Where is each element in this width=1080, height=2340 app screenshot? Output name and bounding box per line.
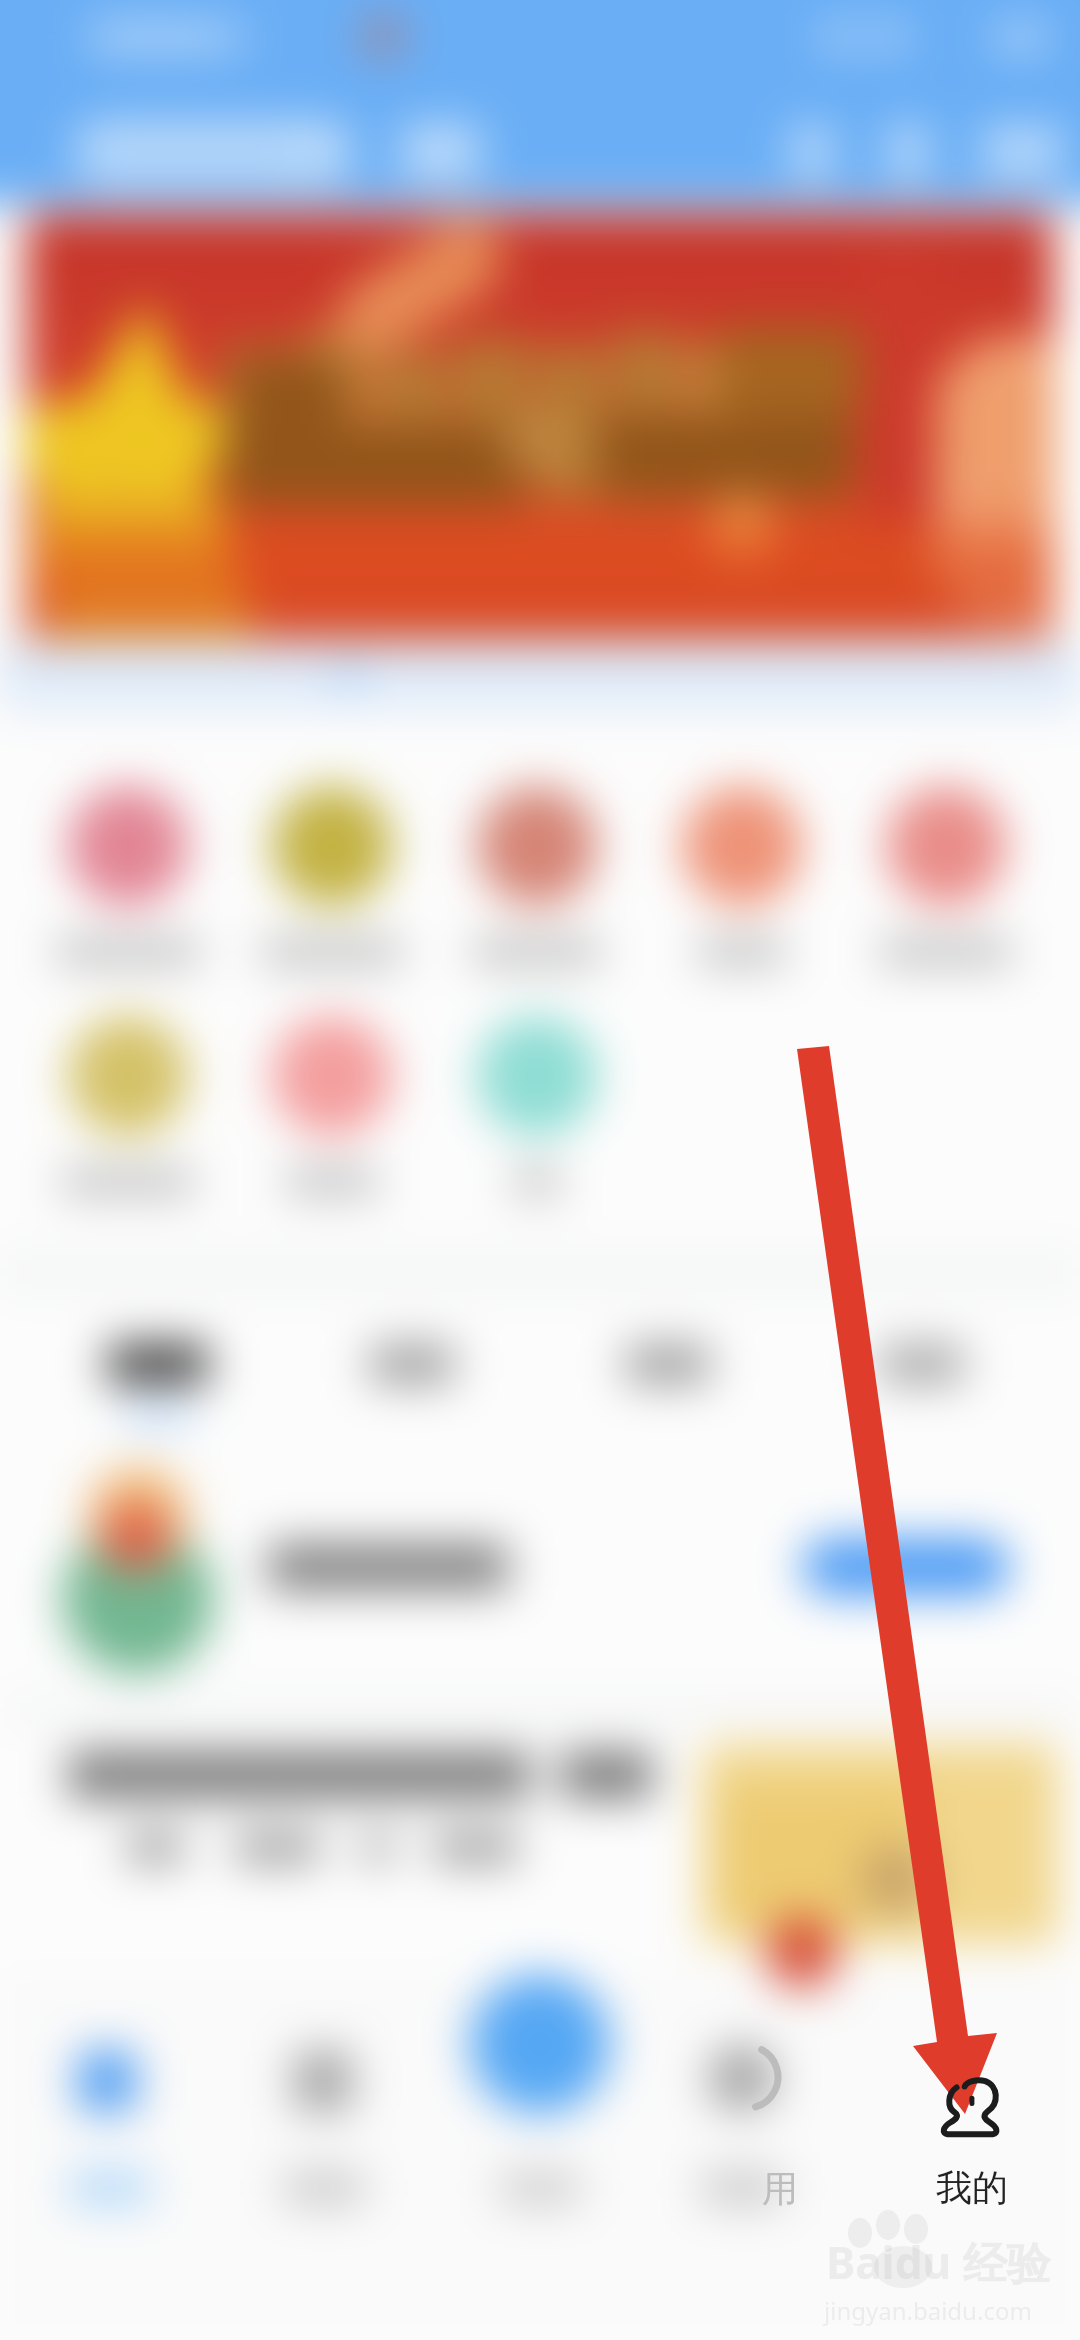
button[interactable]: 我的 [864, 1988, 1080, 2340]
button[interactable]: 应用 [648, 1988, 864, 2340]
button[interactable]: 首页 [0, 1988, 216, 2340]
staticText: jingyan.baidu.com [824, 2294, 1032, 2327]
staticText: 我的 [936, 2165, 1008, 2210]
button[interactable]: 发布 [432, 1988, 648, 2340]
staticText: Baidu 经验 [826, 2232, 1051, 2292]
staticText: 用 [762, 2166, 798, 2211]
button[interactable]: 关注 [216, 1988, 432, 2340]
